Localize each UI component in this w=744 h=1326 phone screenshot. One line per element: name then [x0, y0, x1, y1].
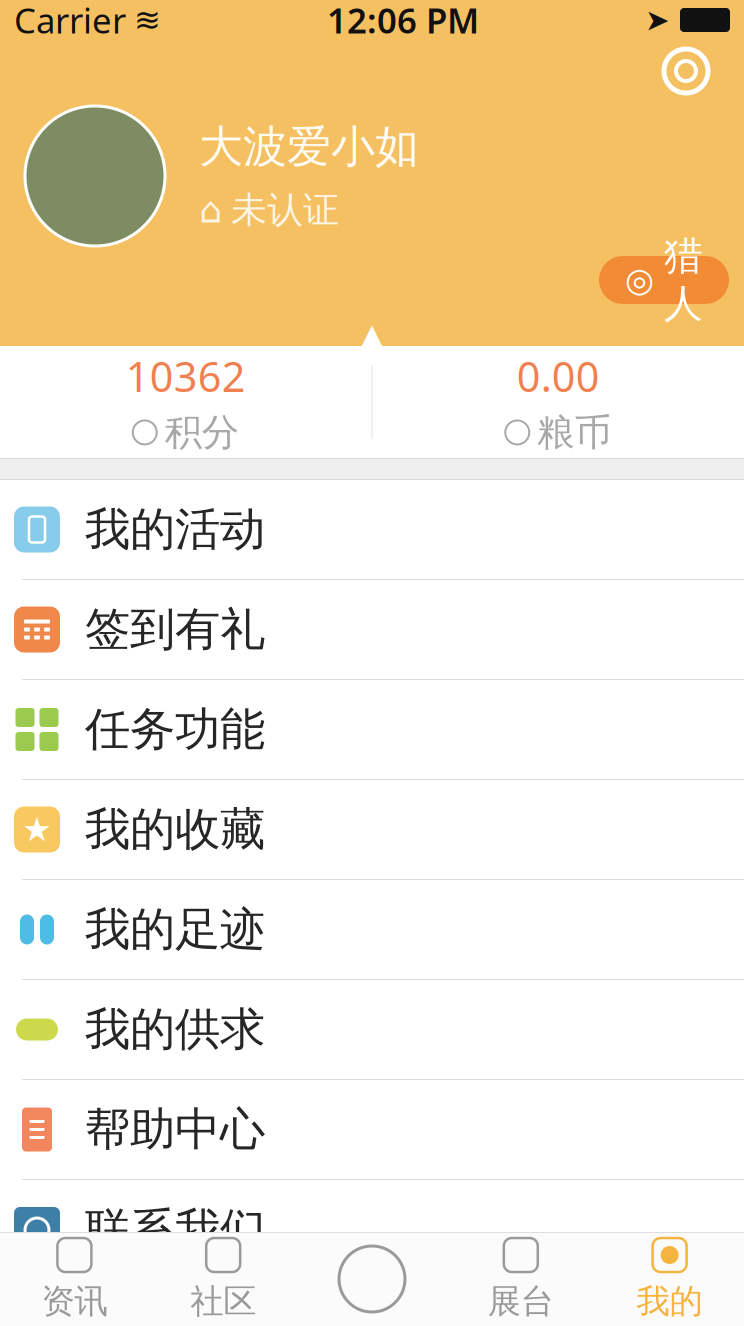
staticText: 签到有礼 — [85, 602, 265, 657]
staticText: 我的供求 — [85, 1002, 265, 1057]
staticText: ★ — [22, 811, 52, 848]
button[interactable]: 10362 — [0, 346, 371, 458]
staticText: ⌂ — [199, 190, 222, 230]
staticText: 12:06 PM — [327, 0, 479, 43]
button[interactable]: 发现 — [298, 1232, 446, 1326]
staticText: 10362 — [126, 349, 246, 403]
staticText: 猎人 — [664, 232, 703, 327]
staticText: 任务功能 — [85, 702, 265, 757]
button[interactable]: 我的供求 — [0, 980, 744, 1080]
staticText: 大波爱小如 — [199, 120, 419, 174]
staticText: 我的活动 — [85, 502, 265, 557]
button[interactable]: 联系我们 — [0, 1180, 744, 1280]
staticText: ➤ — [645, 3, 670, 37]
staticText: 我的 — [637, 1281, 703, 1322]
button[interactable]: 展台 — [446, 1232, 595, 1326]
staticText: 0.00 — [517, 349, 600, 403]
staticText: 未认证 — [231, 188, 339, 232]
staticText: 帮助中心 — [85, 1102, 265, 1157]
staticText: 我的收藏 — [85, 802, 265, 857]
button[interactable]: 帮助中心 — [0, 1080, 744, 1180]
button[interactable]: 签到有礼 — [0, 580, 744, 680]
button[interactable]: 我的活动 — [0, 480, 744, 580]
staticText: 我的足迹 — [85, 902, 265, 957]
staticText: 社区 — [190, 1281, 256, 1322]
staticText: 资讯 — [41, 1281, 107, 1322]
staticText: Carrier — [14, 0, 126, 43]
staticText: 联系我们 — [85, 1202, 265, 1258]
button[interactable]: 我的足迹 — [0, 880, 744, 980]
button[interactable]: Settings — [650, 40, 722, 102]
button[interactable]: 我的 — [595, 1232, 744, 1326]
button[interactable]: 0.00 — [372, 346, 744, 458]
button[interactable]: ★ — [0, 780, 744, 880]
button[interactable]: 社区 — [149, 1232, 298, 1326]
staticText: 粮币 — [537, 409, 611, 455]
button[interactable]: ◎ — [599, 256, 744, 304]
button[interactable]: 任务功能 — [0, 680, 744, 780]
button[interactable]: 资讯 — [0, 1232, 149, 1326]
staticText: 展台 — [488, 1281, 554, 1322]
staticText: 积分 — [165, 409, 239, 455]
staticText: ◎ — [625, 261, 654, 299]
staticText: ≋ — [134, 2, 161, 38]
staticText: ▲ — [350, 310, 393, 374]
